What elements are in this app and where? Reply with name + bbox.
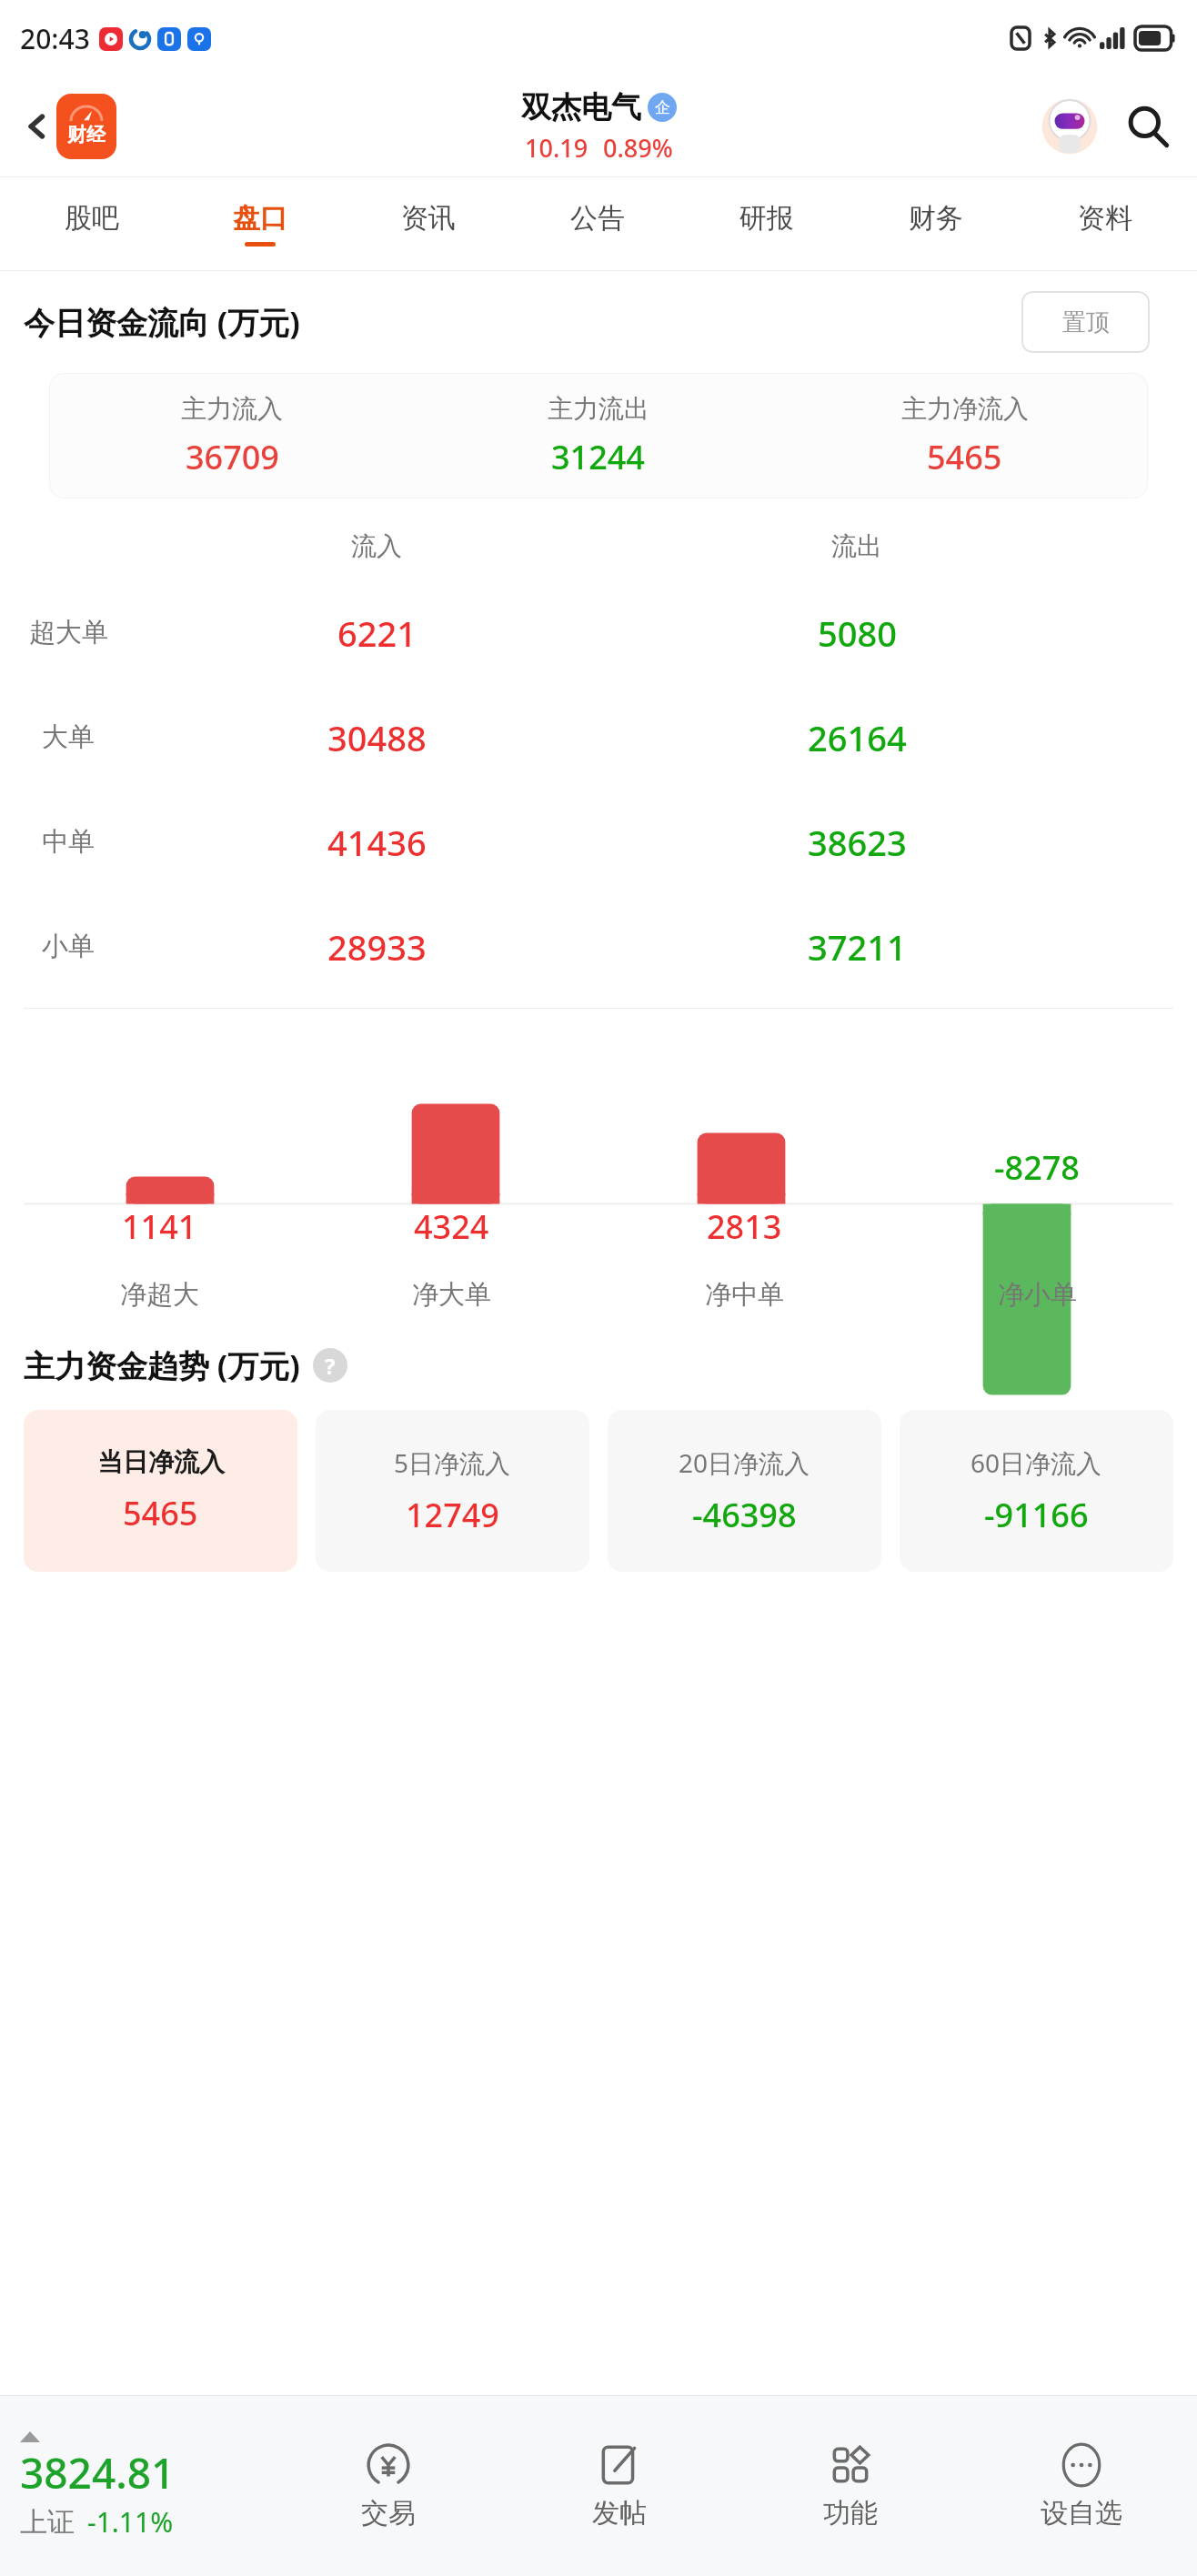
staticText: 股吧	[65, 201, 119, 236]
button[interactable]: 公告	[513, 176, 682, 271]
button[interactable]: 60日净流入	[900, 1410, 1173, 1572]
button[interactable]: 设自选	[966, 2396, 1197, 2576]
button[interactable]: 资料	[1021, 176, 1190, 271]
staticText: 36709	[186, 435, 279, 479]
staticText: 10.19	[525, 131, 588, 165]
staticText: 30488	[327, 714, 427, 761]
button[interactable]: App logo	[56, 94, 116, 159]
staticText: 6221	[337, 609, 417, 657]
staticText: 盘口	[233, 201, 287, 236]
staticText: -1.11%	[87, 2503, 174, 2541]
staticText: 今日资金流向 (万元)	[24, 301, 300, 343]
staticText: 资料	[1078, 201, 1132, 236]
button[interactable]: 交易	[273, 2396, 504, 2576]
button[interactable]: 财务	[851, 176, 1021, 271]
staticText: 28933	[327, 923, 427, 971]
button[interactable]: 研报	[682, 176, 851, 271]
button[interactable]: 股吧	[7, 176, 176, 271]
button[interactable]: 当日净流入	[24, 1410, 297, 1572]
button[interactable]: 置顶	[1021, 291, 1150, 353]
staticText: 资讯	[401, 201, 456, 236]
staticText: 主力流入	[181, 393, 283, 425]
staticText: 26164	[808, 714, 907, 761]
button[interactable]: 超大单	[0, 580, 1197, 685]
staticText: 4324	[414, 1204, 489, 1249]
button[interactable]: 小单	[0, 894, 1197, 999]
button[interactable]: 盘口	[176, 176, 344, 271]
staticText: 3824.81	[20, 2444, 176, 2501]
staticText: 双杰电气	[521, 88, 641, 126]
staticText: 交易	[361, 2496, 416, 2531]
staticText: 12749	[406, 1493, 499, 1537]
staticText: 5465	[927, 435, 1002, 479]
staticText: -46398	[692, 1493, 797, 1537]
staticText: 净超大	[120, 1278, 199, 1312]
button[interactable]: 中单	[0, 790, 1197, 894]
staticText: 财务	[909, 201, 963, 236]
staticText: 当日净流入	[97, 1446, 225, 1478]
staticText: 60日净流入	[971, 1445, 1102, 1480]
button[interactable]: Help	[313, 1348, 347, 1383]
staticText: 5080	[818, 609, 897, 657]
staticText: 净大单	[412, 1278, 491, 1312]
staticText: 功能	[823, 2496, 878, 2531]
staticText: 38623	[808, 819, 907, 866]
staticText: 37211	[808, 923, 907, 971]
button[interactable]: 功能	[735, 2396, 966, 2576]
staticText: 企	[655, 98, 670, 117]
staticText: 中单	[42, 825, 95, 859]
staticText: 1141	[122, 1204, 197, 1249]
staticText: 大单	[42, 720, 95, 754]
staticText: 主力流出	[548, 393, 649, 425]
staticText: 31244	[551, 435, 645, 479]
button[interactable]: 发帖	[504, 2396, 735, 2576]
staticText: 流入	[351, 530, 402, 562]
button[interactable]: 大单	[0, 685, 1197, 790]
staticText: 财经	[67, 123, 106, 146]
staticText: -8278	[994, 1145, 1080, 1190]
staticText: 公告	[570, 201, 625, 236]
staticText: 41436	[327, 819, 427, 866]
staticText: ?	[325, 1351, 336, 1381]
staticText: -91166	[984, 1493, 1089, 1537]
button[interactable]: 主力流入	[49, 373, 1148, 498]
button[interactable]: 20日净流入	[608, 1410, 881, 1572]
staticText: 净中单	[705, 1278, 784, 1312]
staticText: 超大单	[29, 616, 108, 649]
staticText: 2813	[707, 1204, 782, 1249]
staticText: 发帖	[592, 2496, 647, 2531]
staticText: 上证	[20, 2505, 75, 2540]
staticText: 研报	[739, 201, 794, 236]
staticText: 主力净流入	[901, 393, 1029, 425]
staticText: 置顶	[1062, 307, 1110, 337]
staticText: 5日净流入	[394, 1445, 511, 1480]
staticText: 20日净流入	[679, 1445, 810, 1480]
button[interactable]: 3824.81	[0, 2396, 273, 2576]
staticText: 20:43	[20, 20, 90, 57]
button[interactable]: Search	[1115, 94, 1181, 159]
staticText: 5465	[123, 1491, 198, 1535]
button[interactable]: 资讯	[344, 176, 513, 271]
button[interactable]: AI assistant	[1037, 94, 1102, 159]
staticText: 流出	[831, 530, 882, 562]
button[interactable]: 5日净流入	[316, 1410, 589, 1572]
staticText: 小单	[42, 930, 95, 963]
staticText: 0.89%	[603, 131, 673, 165]
staticText: 设自选	[1041, 2496, 1122, 2531]
staticText: 净小单	[998, 1278, 1077, 1312]
staticText: 主力资金趋势 (万元)	[24, 1344, 300, 1386]
button[interactable]: Back	[13, 104, 62, 149]
